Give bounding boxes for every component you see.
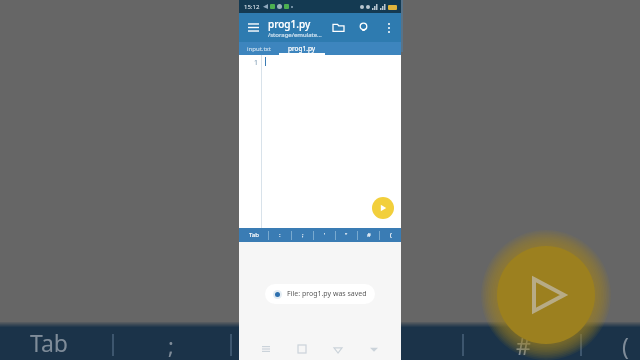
staticText: ; [302,231,304,239]
button[interactable]: Tab [239,228,268,242]
button[interactable]: ; [292,228,313,242]
button[interactable]: ( [380,228,401,242]
staticText: File: prog1.py was saved [287,289,367,299]
button[interactable]: Open folder [326,15,351,40]
staticText: prog1.py [288,44,316,53]
staticText: ( [390,231,392,239]
button[interactable]: Hints [351,15,376,40]
staticText: ; [168,330,174,360]
button[interactable]: " [336,228,357,242]
staticText: ( [622,330,629,360]
staticText: input.txt [247,45,271,53]
staticText: # [516,330,531,360]
button[interactable]: ' [314,228,335,242]
button[interactable]: Run [372,197,394,219]
button[interactable]: input.txt [239,42,279,55]
staticText: : [279,231,281,239]
button[interactable]: # [358,228,379,242]
staticText: Tab [249,231,259,239]
button[interactable]: More options [376,15,401,40]
staticText: prog1.py [268,17,311,31]
button[interactable]: Back [329,340,347,358]
staticText: 15:12 [244,3,260,11]
staticText: Tab [30,327,68,358]
staticText: 1 [253,58,258,68]
button[interactable]: Menu [239,13,268,42]
staticText: ' [324,231,326,239]
staticText: # [367,231,371,239]
button[interactable]: Recents [257,340,275,358]
button[interactable]: Keyboard [365,340,383,358]
staticText: " [345,231,348,239]
button[interactable]: prog1.py [279,42,325,55]
button[interactable]: Home [293,340,311,358]
staticText: /storage/emulate… [268,31,322,39]
button[interactable]: : [269,228,291,242]
